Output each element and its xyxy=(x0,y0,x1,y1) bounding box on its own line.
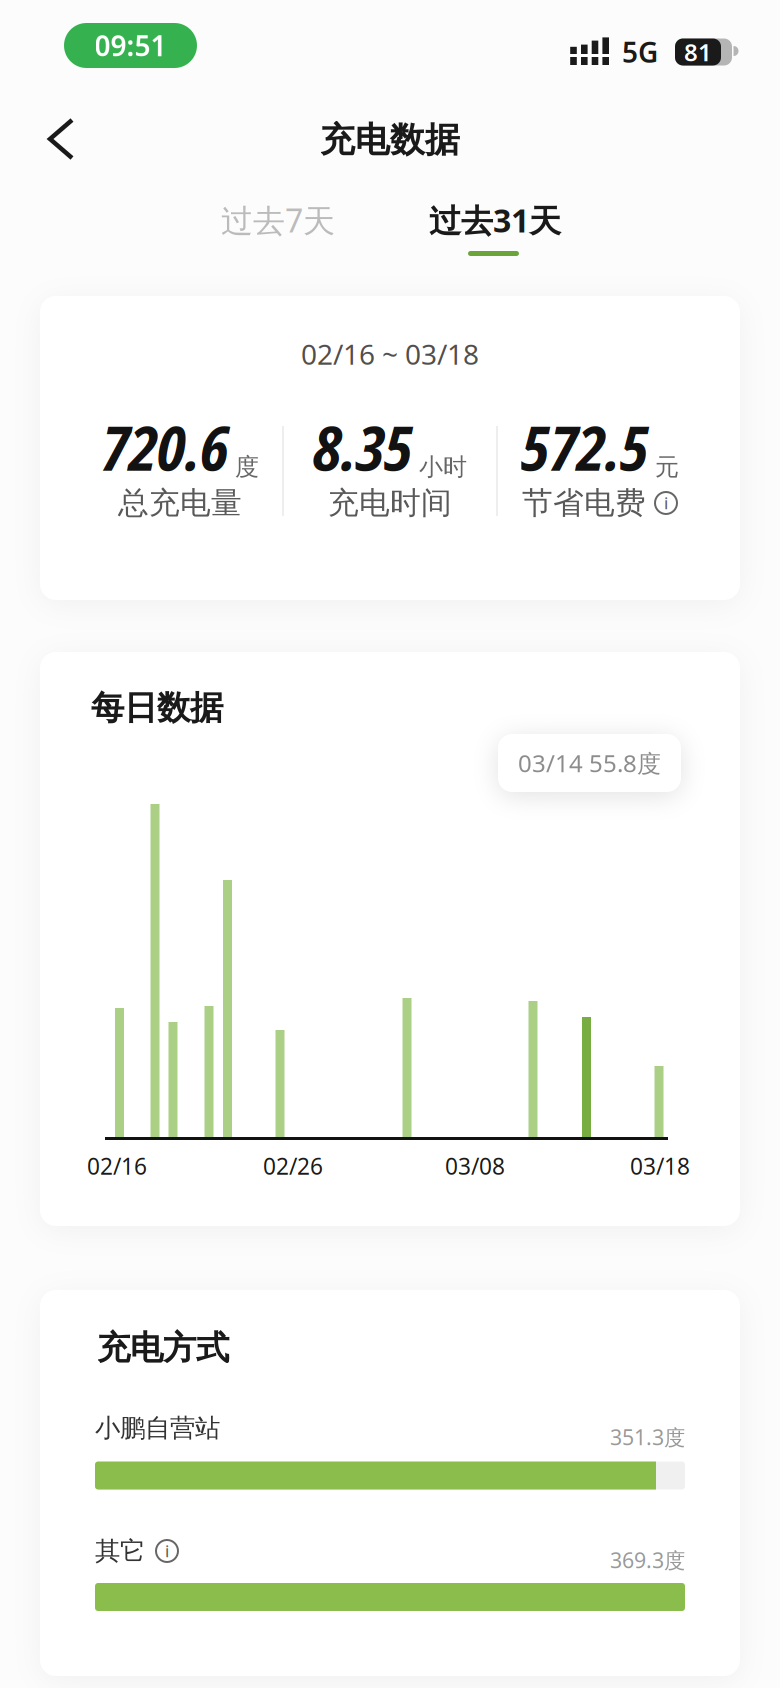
staticText: 充电数据 xyxy=(320,119,460,161)
staticText: 09:51 xyxy=(94,27,166,64)
button[interactable]: 过去7天 xyxy=(188,190,368,250)
staticText: 720.6 xyxy=(101,405,228,489)
staticText: 02/26 xyxy=(263,1151,323,1181)
staticText: 369.3度 xyxy=(610,1546,685,1574)
staticText: 其它 xyxy=(95,1535,145,1566)
staticText: 过去31天 xyxy=(429,199,561,241)
staticText: 8.35 xyxy=(313,405,412,489)
staticText: 充电时间 xyxy=(328,484,452,522)
staticText: 小鹏自营站 xyxy=(95,1412,220,1443)
button[interactable]: i xyxy=(654,491,678,515)
staticText: 03/08 xyxy=(445,1151,505,1181)
staticText: 02/16 xyxy=(87,1151,147,1181)
staticText: 小时 xyxy=(419,452,467,482)
staticText: 03/18 xyxy=(630,1151,690,1181)
staticText: 元 xyxy=(655,452,679,482)
staticText: 02/16 ~ 03/18 xyxy=(301,335,479,373)
staticText: 总充电量 xyxy=(118,484,242,522)
button[interactable]: i xyxy=(155,1539,179,1563)
staticText: 每日数据 xyxy=(91,687,223,728)
staticText: i xyxy=(165,1540,169,1562)
button[interactable]: 过去31天 xyxy=(395,190,595,250)
staticText: 351.3度 xyxy=(610,1423,685,1451)
staticText: 81 xyxy=(684,36,712,68)
staticText: i xyxy=(664,492,668,514)
button[interactable] xyxy=(31,109,91,169)
staticText: 5G xyxy=(622,33,658,71)
staticText: 节省电费 xyxy=(522,484,646,522)
staticText: 572.5 xyxy=(521,405,648,489)
staticText: 03/14 55.8度 xyxy=(518,747,661,779)
staticText: 过去7天 xyxy=(221,199,335,241)
staticText: 度 xyxy=(235,452,259,482)
staticText: 充电方式 xyxy=(97,1327,229,1368)
